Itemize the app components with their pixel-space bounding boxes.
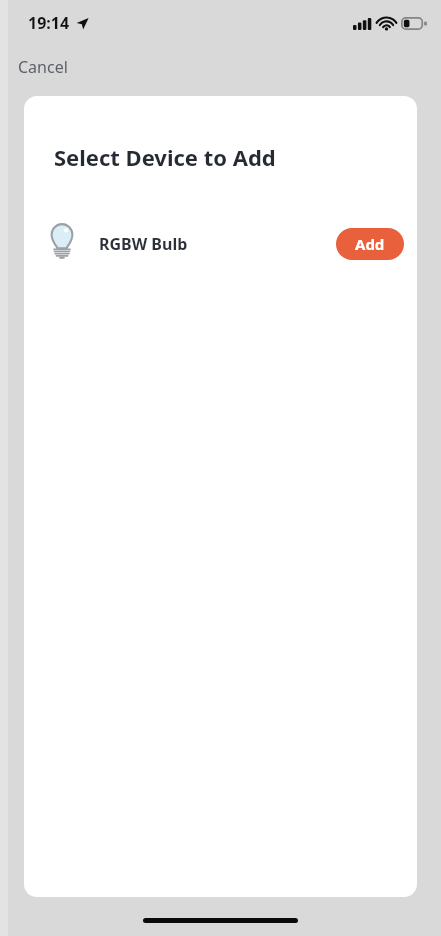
button[interactable]: Add — [336, 228, 404, 260]
staticText: 19:14 — [28, 12, 70, 34]
staticText: RGBW Bulb — [99, 233, 188, 255]
staticText: Add — [355, 234, 385, 254]
staticText: Cancel — [18, 56, 68, 78]
button[interactable]: Cancel — [10, 52, 76, 82]
other: RGBW Bulb — [49, 222, 75, 266]
staticText: Select Device to Add — [54, 142, 276, 172]
button[interactable]: RGBW Bulb — [24, 215, 417, 273]
